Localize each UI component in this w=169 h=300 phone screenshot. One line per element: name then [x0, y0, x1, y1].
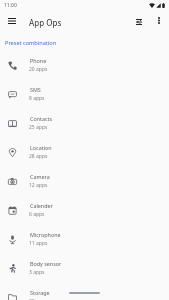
button[interactable]: Storage: [0, 282, 169, 300]
staticText: Preset combination: [5, 39, 57, 47]
button[interactable]: SMS: [0, 79, 169, 108]
button[interactable]: Sort: [130, 13, 148, 31]
button[interactable]: Calender: [0, 195, 169, 224]
button[interactable]: Phone: [0, 50, 169, 79]
staticText: App Ops: [29, 17, 62, 28]
staticText: Camera: [30, 173, 50, 180]
staticText: 28 apps: [29, 153, 48, 160]
button[interactable]: Open navigation drawer: [3, 12, 21, 30]
staticText: 8 apps: [29, 95, 45, 102]
staticText: 30 apps: [29, 298, 48, 300]
staticText: Calender: [30, 202, 53, 209]
staticText: Body sensor: [30, 260, 62, 267]
staticText: Storage: [30, 289, 50, 296]
staticText: Microphone: [30, 231, 61, 238]
staticText: Contacts: [30, 115, 53, 122]
staticText: 6 apps: [29, 211, 45, 218]
button[interactable]: Camera: [0, 166, 169, 195]
staticText: 20 apps: [29, 66, 48, 73]
button[interactable]: Contacts: [0, 108, 169, 137]
staticText: SMS: [30, 86, 41, 93]
staticText: 25 apps: [29, 124, 48, 131]
staticText: 11:00: [4, 2, 17, 9]
button[interactable]: Microphone: [0, 224, 169, 253]
staticText: 3 apps: [29, 269, 45, 276]
staticText: Location: [30, 144, 52, 151]
button[interactable]: Body sensor: [0, 253, 169, 282]
staticText: 11 apps: [29, 240, 48, 247]
button[interactable]: More options: [150, 11, 168, 29]
button[interactable]: Location: [0, 137, 169, 166]
staticText: Phone: [30, 57, 47, 64]
staticText: 12 apps: [29, 182, 48, 189]
button[interactable]: Preset combination: [0, 35, 169, 48]
